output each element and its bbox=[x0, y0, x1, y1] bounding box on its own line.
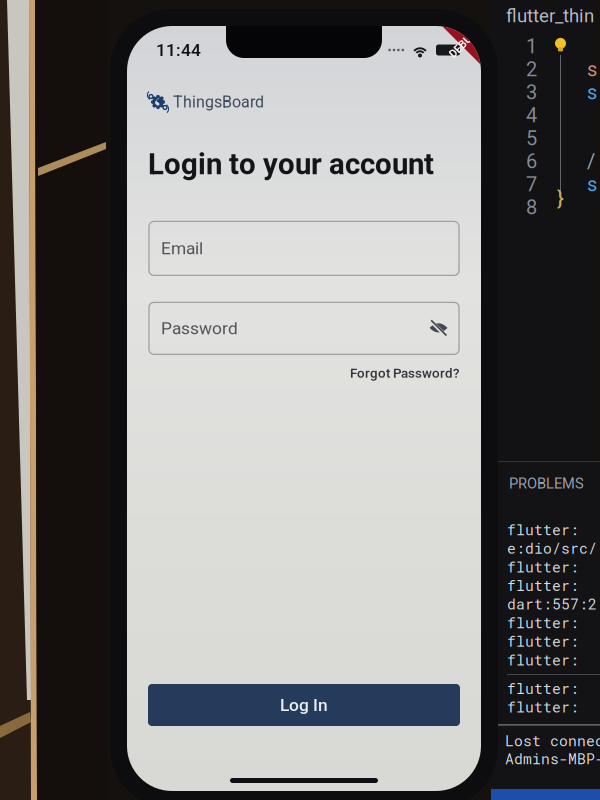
staticText: Password bbox=[161, 318, 238, 338]
button[interactable]: Forgot Password? bbox=[127, 360, 481, 386]
staticText: / bbox=[587, 150, 595, 173]
button[interactable]: Log In bbox=[148, 684, 460, 726]
staticText: flutter: bbox=[507, 631, 579, 651]
staticText: 3 bbox=[526, 81, 537, 104]
staticText: e:dio/src/ bbox=[507, 538, 597, 558]
staticText: Email bbox=[161, 238, 203, 258]
staticText: 4 bbox=[526, 104, 537, 127]
staticText: flutter: bbox=[507, 557, 579, 576]
staticText: dart:557:2 bbox=[507, 594, 597, 613]
staticText: Login to your account bbox=[148, 147, 434, 181]
staticText: Forgot Password? bbox=[350, 365, 459, 381]
staticText: flutter: bbox=[507, 697, 579, 716]
staticText: flutter: bbox=[507, 650, 579, 669]
staticText: 6 bbox=[526, 150, 537, 173]
staticText: ThingsBoard bbox=[173, 93, 264, 111]
staticText: 5 bbox=[526, 127, 537, 150]
staticText: flutter_thin bbox=[506, 5, 594, 27]
staticText: flutter: bbox=[507, 576, 579, 595]
staticText: Admins-MBP- bbox=[505, 749, 600, 768]
staticText: Lost connec bbox=[505, 731, 600, 750]
staticText: flutter: bbox=[507, 613, 579, 632]
staticText: 11:44 bbox=[156, 40, 201, 60]
staticText: 7 bbox=[526, 173, 537, 196]
staticText: 8 bbox=[526, 196, 537, 219]
staticText: s bbox=[587, 173, 597, 196]
staticText: flutter: bbox=[507, 520, 579, 539]
staticText: DEBUG bbox=[446, 38, 480, 50]
staticText: 1 bbox=[526, 35, 537, 58]
staticText: PROBLEMS bbox=[509, 475, 584, 492]
staticText: s bbox=[587, 58, 597, 81]
staticText: } bbox=[557, 187, 564, 210]
staticText: flutter: bbox=[507, 679, 579, 698]
staticText: s bbox=[587, 81, 597, 104]
staticText: 2 bbox=[526, 58, 537, 81]
staticText: Log In bbox=[280, 695, 328, 715]
